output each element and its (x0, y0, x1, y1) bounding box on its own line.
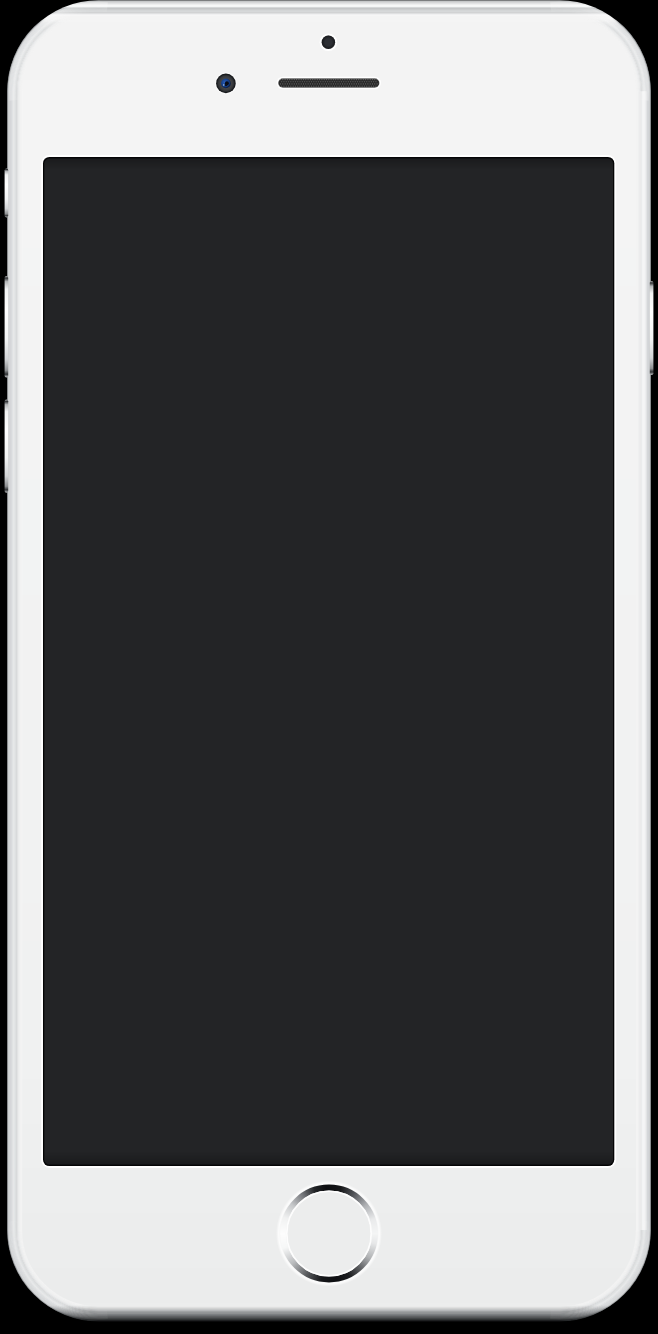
button[interactable]: Home button (279, 1183, 380, 1284)
button[interactable]: Ring silent switch (2, 169, 10, 218)
button[interactable]: Volume down (2, 400, 10, 493)
button[interactable]: Power button (648, 281, 656, 375)
button[interactable]: Volume up (2, 276, 10, 378)
